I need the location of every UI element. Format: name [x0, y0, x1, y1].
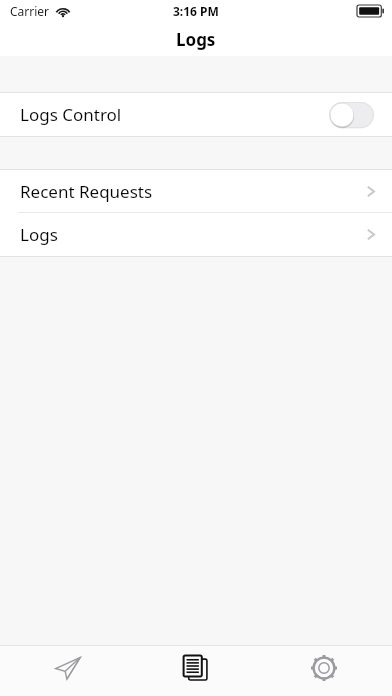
button[interactable]: Send — [8, 646, 128, 696]
staticText: Logs — [176, 28, 216, 51]
button[interactable]: Logs Control toggle — [329, 102, 374, 128]
button[interactable]: Settings — [264, 646, 384, 696]
button[interactable]: Recent Requests — [0, 170, 392, 212]
button[interactable]: Logs Control — [0, 93, 392, 136]
staticText: Logs Control — [20, 103, 122, 126]
staticText: 3:16 PM — [173, 3, 219, 19]
staticText: Logs — [20, 223, 58, 246]
staticText: Carrier — [10, 3, 50, 19]
staticText: Recent Requests — [20, 180, 153, 203]
button[interactable]: Logs — [136, 646, 256, 696]
button[interactable]: Logs — [0, 213, 392, 256]
